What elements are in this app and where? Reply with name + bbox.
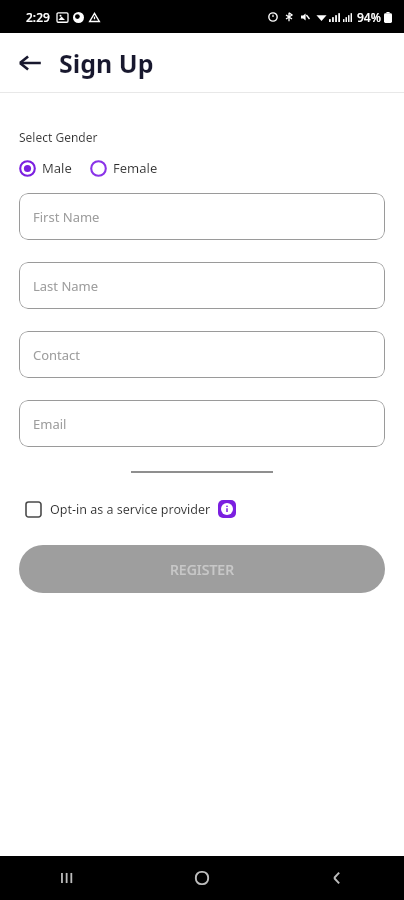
button[interactable]: Opt-in as a service provider checkbox: [19, 495, 47, 523]
staticText: Email: [33, 415, 67, 433]
button[interactable]: Contact: [19, 331, 385, 378]
button[interactable]: Female: [90, 157, 158, 179]
button[interactable]: More information: [218, 500, 236, 518]
button[interactable]: Back: [269, 856, 404, 900]
button[interactable]: Email: [19, 400, 385, 447]
staticText: Male: [42, 159, 72, 177]
button[interactable]: Home: [134, 856, 269, 900]
staticText: 2:29: [26, 9, 50, 25]
button[interactable]: Male: [19, 157, 72, 179]
button[interactable]: First Name: [19, 193, 385, 240]
button[interactable]: Last Name: [19, 262, 385, 309]
button[interactable]: Back: [8, 41, 52, 85]
staticText: Select Gender: [19, 129, 98, 145]
staticText: Female: [113, 159, 158, 177]
button[interactable]: REGISTER: [19, 545, 385, 593]
staticText: Opt-in as a service provider: [50, 501, 211, 518]
staticText: REGISTER: [170, 560, 234, 579]
staticText: Last Name: [33, 277, 99, 295]
staticText: Contact: [33, 346, 81, 364]
staticText: Sign Up: [59, 46, 154, 80]
staticText: 94%: [357, 9, 381, 25]
button[interactable]: Recent apps: [0, 856, 134, 900]
staticText: First Name: [33, 208, 100, 226]
